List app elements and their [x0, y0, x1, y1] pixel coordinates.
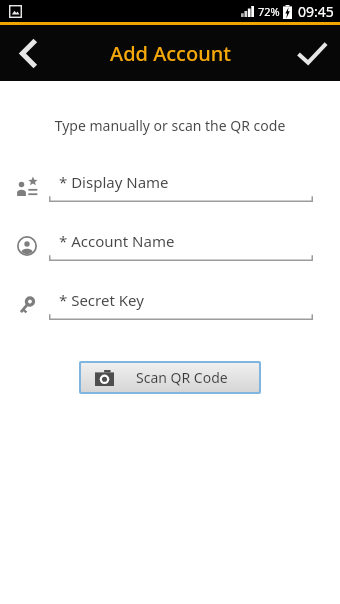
staticText: * Secret Key — [59, 290, 144, 310]
button[interactable]: Back — [0, 25, 56, 81]
button[interactable]: * Account Name — [0, 224, 340, 261]
staticText: * Account Name — [59, 231, 175, 251]
staticText: Scan QR Code — [136, 368, 228, 387]
button[interactable]: * Secret Key — [0, 283, 340, 320]
staticText: 72% — [258, 4, 280, 19]
staticText: Type manually or scan the QR code — [0, 116, 340, 135]
button[interactable]: Save account — [284, 25, 340, 81]
button[interactable]: * Display Name — [0, 165, 340, 202]
staticText: 09:45 — [298, 2, 334, 21]
staticText: Add Account — [110, 40, 231, 67]
button[interactable]: Scan QR Code — [81, 363, 259, 392]
staticText: * Display Name — [59, 172, 169, 192]
